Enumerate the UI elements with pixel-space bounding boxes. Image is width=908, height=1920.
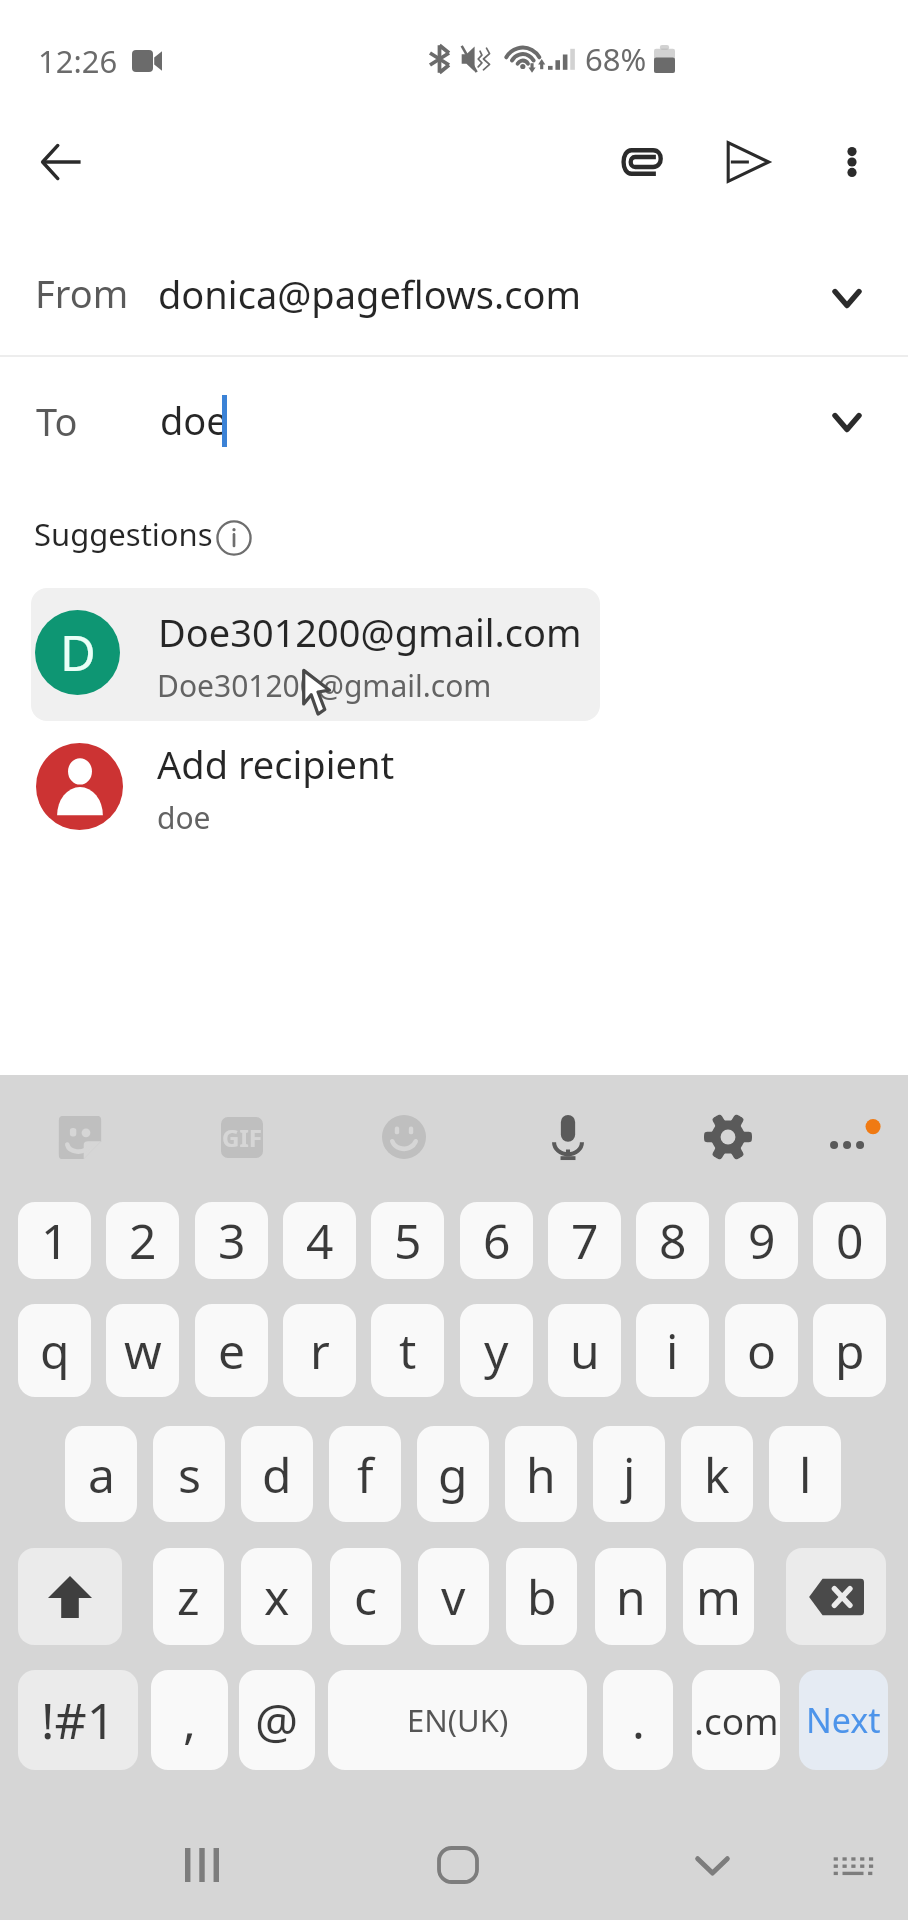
button[interactable]: b [506,1548,577,1645]
button[interactable]: Back [11,112,111,212]
staticText: 6 [483,1208,511,1273]
button[interactable]: !#1 [18,1670,138,1770]
button[interactable]: More options [816,1101,888,1173]
button[interactable]: Shift [18,1548,122,1645]
button[interactable]: g [417,1426,489,1522]
button[interactable]: Voice input [532,1101,604,1173]
staticText: !#1 [41,1686,116,1754]
button[interactable]: s [153,1426,225,1522]
staticText: Doe301200@gmail.com [157,665,492,706]
staticText: 9 [748,1208,776,1273]
button[interactable]: From [0,252,908,356]
staticText: From [35,267,129,319]
staticText: z [177,1564,200,1629]
button[interactable]: Keyboard settings [692,1101,764,1173]
staticText: EN(UK) [407,1699,509,1741]
staticText: 3 [218,1208,246,1273]
staticText: doe [160,394,228,446]
button[interactable]: , [151,1670,228,1770]
button[interactable]: 3 [195,1202,268,1279]
staticText: doe [157,797,211,838]
button[interactable]: r [283,1304,356,1397]
button[interactable]: Backspace [786,1548,886,1645]
button[interactable]: 4 [283,1202,356,1279]
staticText: . [632,1688,645,1753]
staticText: Add recipient [157,738,395,790]
staticText: c [354,1564,378,1629]
button[interactable]: Hide keyboard [674,1827,750,1903]
button[interactable]: q [18,1304,91,1397]
button[interactable]: 1 [18,1202,91,1279]
button[interactable]: 2 [106,1202,179,1279]
staticText: 1 [41,1208,69,1273]
button[interactable]: y [460,1304,533,1397]
staticText: Suggestions [34,513,213,555]
staticText: 0 [836,1208,864,1273]
button[interactable]: Next [799,1670,888,1770]
staticText: i [666,1318,679,1383]
button[interactable]: p [813,1304,886,1397]
button[interactable]: h [505,1426,577,1522]
staticText: b [527,1564,557,1629]
staticText: 8 [659,1208,687,1273]
staticText: g [438,1442,468,1507]
staticText: v [441,1564,466,1629]
button[interactable]: Attach file [593,112,693,212]
button[interactable]: D [31,588,600,721]
button[interactable]: 9 [725,1202,798,1279]
button[interactable]: 6 [460,1202,533,1279]
button[interactable]: Home [420,1827,496,1903]
button[interactable]: m [683,1548,754,1645]
button[interactable]: Stickers [44,1101,116,1173]
button[interactable]: Switch keyboard layout [815,1827,891,1903]
staticText: n [616,1564,646,1629]
staticText: j [623,1442,636,1507]
staticText: , [183,1688,196,1753]
button[interactable]: Information [214,518,254,558]
button[interactable]: d [241,1426,313,1522]
button[interactable]: a [65,1426,137,1522]
button[interactable]: j [593,1426,665,1522]
staticText: o [747,1318,777,1383]
button[interactable]: l [769,1426,841,1522]
button[interactable]: . [603,1670,673,1770]
staticText: D [60,619,96,686]
button[interactable]: i [636,1304,709,1397]
staticText: 2 [129,1208,157,1273]
button[interactable]: z [153,1548,224,1645]
staticText: h [526,1442,556,1507]
staticText: To [36,395,78,447]
button[interactable]: c [330,1548,401,1645]
button[interactable]: GIF [206,1101,278,1173]
button[interactable]: Add recipient [0,721,908,861]
button[interactable]: EN(UK) [328,1670,587,1770]
button[interactable]: 8 [636,1202,709,1279]
button[interactable]: Send [698,112,798,212]
button[interactable]: @ [239,1670,315,1770]
button[interactable]: v [418,1548,489,1645]
button[interactable]: f [329,1426,401,1522]
staticText: x [264,1564,290,1629]
button[interactable]: 5 [371,1202,444,1279]
button[interactable]: e [195,1304,268,1397]
button[interactable]: Emoji [368,1101,440,1173]
button[interactable]: To [0,357,908,483]
button[interactable]: t [371,1304,444,1397]
staticText: y [484,1318,509,1383]
button[interactable]: n [595,1548,666,1645]
button[interactable]: Recent apps [164,1827,240,1903]
button[interactable]: o [725,1304,798,1397]
button[interactable]: 7 [548,1202,621,1279]
staticText: 5 [394,1208,422,1273]
button[interactable]: 0 [813,1202,886,1279]
button[interactable]: w [106,1304,179,1397]
button[interactable]: k [681,1426,753,1522]
button[interactable]: x [241,1548,312,1645]
button[interactable]: More options [802,112,902,212]
staticText: t [399,1318,417,1383]
staticText: e [218,1318,246,1383]
staticText: .com [694,1695,779,1745]
staticText: u [570,1318,600,1383]
button[interactable]: u [548,1304,621,1397]
button[interactable]: .com [692,1670,780,1770]
